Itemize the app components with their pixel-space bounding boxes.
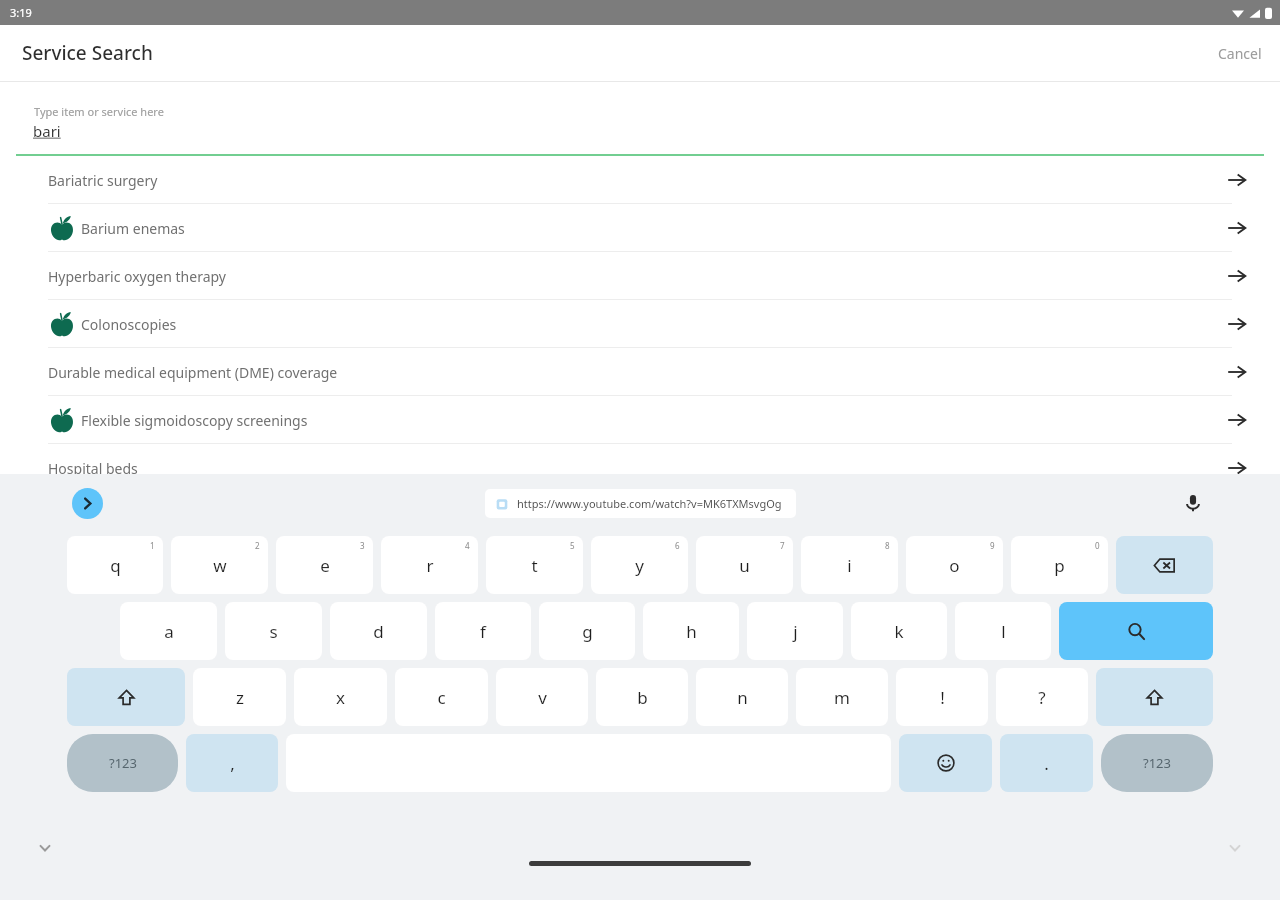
button[interactable]: Type item or service here: [0, 82, 1280, 156]
button[interactable]: x: [294, 668, 387, 726]
staticText: 9: [990, 540, 995, 551]
button[interactable]: m: [796, 668, 888, 726]
button[interactable]: .: [1000, 734, 1093, 792]
staticText: bari: [33, 121, 61, 141]
button[interactable]: Hide keyboard: [32, 835, 58, 861]
staticText: x: [336, 686, 345, 709]
button[interactable]: Durable medical equipment (DME) coverage: [0, 348, 1280, 396]
staticText: a: [164, 620, 174, 643]
staticText: .: [1044, 752, 1049, 775]
button[interactable]: u: [696, 536, 793, 594]
button[interactable]: f: [435, 602, 531, 660]
button[interactable]: Barium enemas: [0, 204, 1280, 252]
staticText: p: [1054, 554, 1065, 577]
staticText: 3: [360, 540, 365, 551]
staticText: 7: [780, 540, 785, 551]
button[interactable]: More suggestions: [72, 488, 103, 519]
button[interactable]: Shift: [67, 668, 185, 726]
staticText: ?123: [1143, 754, 1171, 772]
staticText: Hyperbaric oxygen therapy: [48, 267, 226, 286]
button[interactable]: ?: [996, 668, 1088, 726]
button[interactable]: c: [395, 668, 488, 726]
button[interactable]: k: [851, 602, 947, 660]
button[interactable]: Search: [1059, 602, 1213, 660]
button[interactable]: o: [906, 536, 1003, 594]
staticText: ,: [230, 752, 235, 775]
staticText: o: [949, 554, 960, 577]
staticText: r: [426, 554, 434, 577]
staticText: s: [269, 620, 278, 643]
button[interactable]: i: [801, 536, 898, 594]
staticText: 3:19: [10, 5, 32, 20]
button[interactable]: https://www.youtube.com/watch?v=MK6TXMsv…: [485, 489, 796, 518]
button[interactable]: Hyperbaric oxygen therapy: [0, 252, 1280, 300]
button[interactable]: ,: [186, 734, 278, 792]
button[interactable]: g: [539, 602, 635, 660]
staticText: w: [213, 554, 227, 577]
button[interactable]: Backspace: [1116, 536, 1213, 594]
button[interactable]: j: [747, 602, 843, 660]
staticText: Hospital beds: [48, 459, 138, 478]
staticText: 2: [255, 540, 260, 551]
staticText: Bariatric surgery: [48, 171, 158, 190]
button[interactable]: q: [67, 536, 163, 594]
button[interactable]: Flexible sigmoidoscopy screenings: [0, 396, 1280, 444]
staticText: Colonoscopies: [81, 315, 177, 334]
staticText: Type item or service here: [34, 104, 164, 119]
staticText: Service Search: [22, 40, 153, 66]
staticText: b: [637, 686, 648, 709]
button[interactable]: d: [330, 602, 427, 660]
button[interactable]: Cancel: [1200, 30, 1280, 77]
staticText: https://www.youtube.com/watch?v=MK6TXMsv…: [517, 496, 782, 511]
button[interactable]: p: [1011, 536, 1108, 594]
staticText: f: [480, 620, 486, 643]
button[interactable]: r: [381, 536, 478, 594]
button[interactable]: n: [696, 668, 788, 726]
staticText: ?: [1038, 686, 1046, 709]
staticText: q: [110, 554, 121, 577]
staticText: m: [834, 686, 850, 709]
button[interactable]: ?123: [67, 734, 178, 792]
staticText: 5: [570, 540, 575, 551]
button[interactable]: l: [955, 602, 1051, 660]
button[interactable]: w: [171, 536, 268, 594]
staticText: e: [320, 554, 330, 577]
button[interactable]: a: [120, 602, 217, 660]
staticText: !: [940, 686, 945, 709]
staticText: Barium enemas: [81, 219, 185, 238]
staticText: u: [739, 554, 750, 577]
staticText: i: [847, 554, 852, 577]
staticText: 4: [465, 540, 470, 551]
staticText: t: [531, 554, 538, 577]
staticText: h: [686, 620, 697, 643]
button[interactable]: Colonoscopies: [0, 300, 1280, 348]
staticText: l: [1001, 620, 1006, 643]
button[interactable]: ?123: [1101, 734, 1213, 792]
staticText: Flexible sigmoidoscopy screenings: [81, 411, 308, 430]
button[interactable]: Emoji: [899, 734, 992, 792]
button[interactable]: !: [896, 668, 988, 726]
staticText: y: [635, 554, 644, 577]
button[interactable]: v: [496, 668, 588, 726]
button[interactable]: e: [276, 536, 373, 594]
button[interactable]: b: [596, 668, 688, 726]
staticText: j: [793, 620, 798, 643]
button[interactable]: s: [225, 602, 322, 660]
staticText: ?123: [109, 754, 137, 772]
staticText: g: [582, 620, 593, 643]
button[interactable]: Shift: [1096, 668, 1213, 726]
staticText: 0: [1095, 540, 1100, 551]
button[interactable]: Hospital beds: [0, 444, 1280, 492]
staticText: 6: [675, 540, 680, 551]
staticText: z: [236, 686, 244, 709]
staticText: 8: [885, 540, 890, 551]
button[interactable]: Voice input: [1180, 490, 1206, 516]
staticText: Cancel: [1218, 44, 1262, 63]
button[interactable]: z: [193, 668, 286, 726]
button[interactable]: h: [643, 602, 739, 660]
staticText: v: [538, 686, 547, 709]
button[interactable]: t: [486, 536, 583, 594]
button[interactable]: y: [591, 536, 688, 594]
button[interactable]: Bariatric surgery: [0, 156, 1280, 204]
